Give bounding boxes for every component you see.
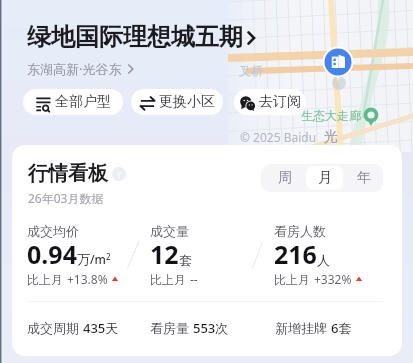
staticText: 月 bbox=[318, 169, 332, 187]
button[interactable]: 周 bbox=[266, 166, 303, 190]
staticText: 26年03月数据 bbox=[28, 190, 104, 206]
button[interactable]: 全部户型 bbox=[23, 89, 123, 115]
button[interactable]: 绿地国际理想城五期 bbox=[27, 22, 260, 52]
staticText: +13.8% bbox=[67, 271, 108, 287]
staticText: ? bbox=[117, 168, 122, 180]
staticText: 12 bbox=[150, 237, 179, 271]
staticText: 435天 bbox=[83, 319, 119, 337]
staticText: 0.94 bbox=[27, 237, 77, 271]
staticText: 全部户型 bbox=[55, 93, 111, 111]
button[interactable]: 东湖高新·光谷东 bbox=[27, 60, 137, 78]
staticText: 6套 bbox=[331, 319, 352, 337]
staticText: 套 bbox=[179, 252, 192, 268]
staticText: 看房量 bbox=[150, 319, 193, 337]
staticText: 新增挂牌 bbox=[275, 319, 331, 337]
staticText: 看房人数 bbox=[274, 223, 326, 239]
staticText: 叉桥 bbox=[239, 63, 263, 78]
staticText: +332% bbox=[314, 271, 352, 287]
button[interactable]: 行情看板 bbox=[28, 161, 126, 186]
button[interactable]: 年 bbox=[345, 166, 382, 190]
staticText: 生态大走廊 bbox=[301, 108, 361, 123]
staticText: 成交周期 bbox=[27, 319, 83, 337]
staticText: 更换小区 bbox=[159, 93, 215, 111]
button[interactable]: 去订阅 bbox=[234, 89, 306, 115]
staticText: 绿地国际理想城五期 bbox=[27, 22, 243, 52]
staticText: 成交量 bbox=[150, 223, 189, 239]
button[interactable]: 更换小区 bbox=[131, 89, 223, 115]
staticText: 成交均价 bbox=[27, 223, 79, 239]
button[interactable]: 月 bbox=[306, 166, 343, 190]
staticText: 万/m2 bbox=[77, 251, 111, 268]
staticText: 光 bbox=[324, 128, 338, 146]
staticText: 比上月 bbox=[274, 271, 314, 287]
staticText: 比上月 bbox=[150, 271, 190, 287]
staticText: -- bbox=[190, 271, 198, 287]
staticText: © 2025 Baidu bbox=[240, 129, 317, 145]
staticText: 东湖高新·光谷东 bbox=[27, 60, 122, 78]
staticText: 周 bbox=[278, 169, 292, 187]
staticText: 216 bbox=[274, 237, 317, 271]
staticText: 人 bbox=[317, 252, 330, 268]
staticText: 去订阅 bbox=[259, 93, 301, 111]
staticText: 行情看板 bbox=[28, 161, 108, 186]
staticText: 年 bbox=[357, 169, 371, 187]
staticText: 比上月 bbox=[27, 271, 67, 287]
staticText: 553次 bbox=[193, 319, 229, 337]
